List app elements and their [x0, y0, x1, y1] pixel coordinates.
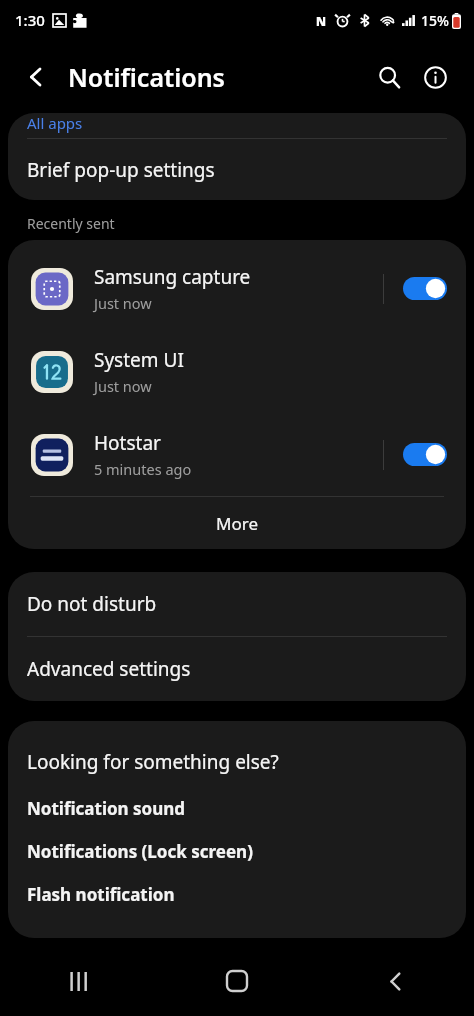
staticText: Just now: [94, 293, 152, 313]
button[interactable]: Hotstar: [8, 413, 466, 496]
button[interactable]: System UI: [8, 330, 466, 413]
staticText: 1:30: [15, 10, 45, 30]
button[interactable]: Samsung capture: [8, 247, 466, 330]
staticText: Hotstar: [94, 430, 161, 456]
button[interactable]: Notifications (Lock screen): [27, 840, 253, 863]
staticText: Recently sent: [27, 214, 115, 233]
staticText: Do not disturb: [27, 591, 157, 617]
staticText: All apps: [27, 113, 83, 133]
staticText: 15%: [421, 11, 449, 30]
staticText: Notifications: [68, 60, 225, 94]
staticText: 5 minutes ago: [94, 459, 192, 479]
button[interactable]: Advanced settings: [8, 637, 466, 701]
button[interactable]: Search: [368, 56, 410, 98]
staticText: Flash notification: [27, 883, 175, 906]
staticText: System UI: [94, 347, 184, 373]
button[interactable]: Navigate up: [17, 58, 55, 96]
staticText: Notifications (Lock screen): [27, 840, 253, 863]
staticText: N: [316, 13, 327, 29]
staticText: Samsung capture: [94, 264, 251, 290]
staticText: Advanced settings: [27, 656, 191, 682]
button[interactable]: Toggle notifications for Hotstar: [398, 438, 452, 471]
button[interactable]: Brief pop-up settings: [8, 139, 466, 200]
button[interactable]: Home: [158, 946, 316, 1016]
staticText: Brief pop-up settings: [27, 157, 215, 183]
button[interactable]: About notifications: [414, 56, 456, 98]
button[interactable]: Toggle notifications for Samsung capture: [398, 272, 452, 305]
button[interactable]: More: [8, 497, 466, 549]
button[interactable]: Do not disturb: [8, 572, 466, 636]
button[interactable]: Recent apps: [0, 946, 158, 1016]
staticText: Notification sound: [27, 797, 186, 820]
staticText: More: [216, 512, 258, 535]
button[interactable]: Notification sound: [27, 797, 186, 820]
staticText: Just now: [94, 376, 152, 396]
button[interactable]: Back: [316, 946, 474, 1016]
button[interactable]: Flash notification: [27, 883, 175, 906]
staticText: Looking for something else?: [27, 749, 279, 775]
